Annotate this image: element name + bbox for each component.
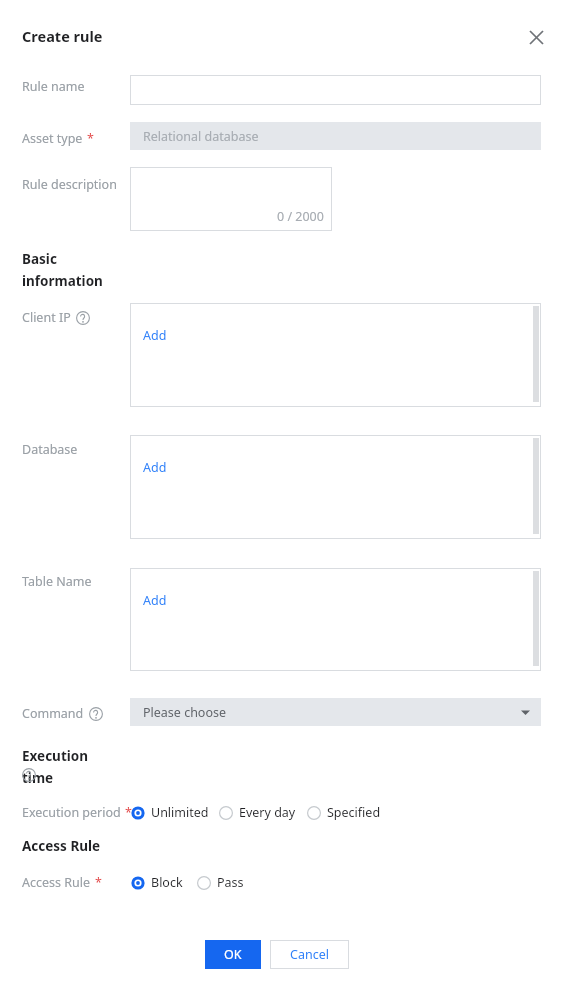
- button[interactable]: Add: [130, 568, 541, 671]
- staticText: Rule name: [22, 78, 85, 95]
- button[interactable]: Add: [143, 327, 167, 344]
- staticText: Specified: [327, 804, 381, 821]
- button[interactable]: Add: [143, 592, 167, 609]
- staticText: OK: [224, 946, 242, 963]
- button[interactable]: OK: [205, 940, 261, 969]
- staticText: Relational database: [143, 128, 259, 145]
- staticText: Block: [151, 874, 183, 891]
- button[interactable]: Relational database: [130, 122, 541, 150]
- staticText: Basic information: [22, 250, 122, 290]
- button[interactable]: Close: [522, 23, 550, 51]
- staticText: Rule description: [22, 176, 117, 193]
- button[interactable]: Unlimited: [130, 802, 210, 823]
- button[interactable]: Please choose: [130, 698, 541, 726]
- button[interactable]: 0 / 2000: [130, 167, 332, 231]
- button[interactable]: Every day: [218, 802, 297, 823]
- button[interactable]: Specified: [306, 802, 382, 823]
- staticText: *: [95, 874, 102, 891]
- staticText: Create rule: [22, 26, 103, 46]
- staticText: Cancel: [290, 946, 329, 963]
- staticText: Execution period: [22, 804, 121, 821]
- staticText: Table Name: [22, 573, 92, 590]
- staticText: Please choose: [143, 704, 227, 721]
- staticText: *: [87, 130, 94, 147]
- staticText: Access Rule: [22, 837, 101, 855]
- staticText: Execution time: [22, 747, 122, 787]
- button[interactable]: Pass: [196, 872, 245, 893]
- staticText: Pass: [217, 874, 244, 891]
- button[interactable]: Block: [130, 872, 184, 893]
- staticText: Asset type: [22, 130, 83, 147]
- staticText: 0 / 2000: [277, 208, 324, 225]
- staticText: *: [125, 804, 132, 821]
- button[interactable]: [130, 75, 541, 105]
- button[interactable]: Add: [130, 435, 541, 539]
- staticText: Unlimited: [151, 804, 209, 821]
- staticText: Database: [22, 441, 78, 458]
- staticText: Client IP: [22, 309, 71, 326]
- staticText: Access Rule: [22, 874, 91, 891]
- staticText: Every day: [239, 804, 296, 821]
- staticText: Command: [22, 705, 84, 722]
- button[interactable]: Cancel: [270, 940, 349, 969]
- button[interactable]: Add: [130, 303, 541, 407]
- button[interactable]: Add: [143, 459, 167, 476]
